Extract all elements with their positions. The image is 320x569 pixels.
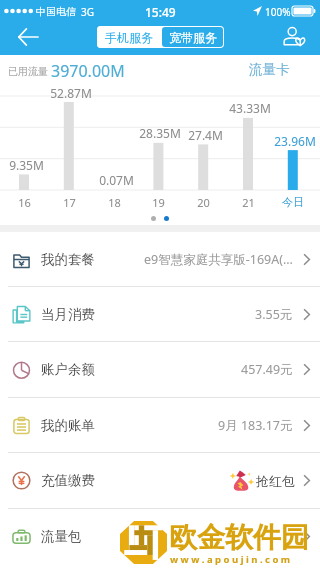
staticText: 手机服务: [105, 30, 153, 45]
staticText: 18: [108, 195, 121, 210]
button[interactable]: 流量卡: [241, 58, 297, 80]
staticText: 3970.00M: [51, 60, 125, 82]
button[interactable]: Back: [8, 23, 48, 51]
staticText: 流量卡: [249, 61, 290, 78]
staticText: 20: [197, 195, 210, 210]
button[interactable]: 我的套餐: [0, 232, 320, 286]
staticText: 23.96M: [274, 133, 316, 149]
staticText: 17: [63, 195, 76, 210]
staticText: 457.49元: [241, 361, 293, 378]
staticText: 欧金软件园: [169, 520, 309, 555]
staticText: 100%: [265, 5, 291, 19]
button[interactable]: 流量包: [0, 509, 320, 564]
staticText: 账户余额: [41, 361, 95, 378]
staticText: 0.07M: [99, 172, 134, 188]
staticText: 宽带服务: [169, 30, 217, 45]
staticText: 9.35M: [9, 157, 44, 173]
staticText: 我的套餐: [41, 251, 95, 268]
staticText: 16: [18, 195, 31, 210]
button[interactable]: 手机服务: [97, 26, 161, 48]
staticText: 19: [152, 195, 165, 210]
button[interactable]: 当月消费: [0, 287, 320, 341]
staticText: 今日: [282, 195, 304, 209]
staticText: 抢红包: [256, 473, 295, 489]
staticText: 已用流量: [8, 65, 48, 78]
staticText: 9月 183.17元: [218, 417, 293, 434]
staticText: 28.35M: [139, 125, 181, 141]
staticText: 27.4M: [188, 127, 223, 143]
button[interactable]: 充值缴费: [0, 453, 320, 508]
staticText: w w w . a p o u j i n . c o m: [170, 553, 291, 566]
staticText: 当月消费: [41, 306, 95, 323]
staticText: 流量包: [41, 528, 82, 545]
button[interactable]: My account: [276, 23, 312, 51]
staticText: 中国电信: [36, 5, 76, 18]
staticText: 充值缴费: [41, 472, 95, 489]
staticText: 15:49: [145, 4, 176, 20]
button[interactable]: 宽带服务: [162, 27, 223, 47]
staticText: 21: [242, 195, 255, 210]
button[interactable]: 我的账单: [0, 398, 320, 452]
staticText: 52.87M: [50, 85, 92, 101]
staticText: 3G: [81, 5, 94, 19]
staticText: 43.33M: [229, 100, 271, 116]
button[interactable]: 账户余额: [0, 342, 320, 397]
staticText: 3.55元: [255, 306, 293, 323]
staticText: 我的账单: [41, 417, 95, 434]
staticText: e9智慧家庭共享版-169A(...: [144, 251, 293, 268]
